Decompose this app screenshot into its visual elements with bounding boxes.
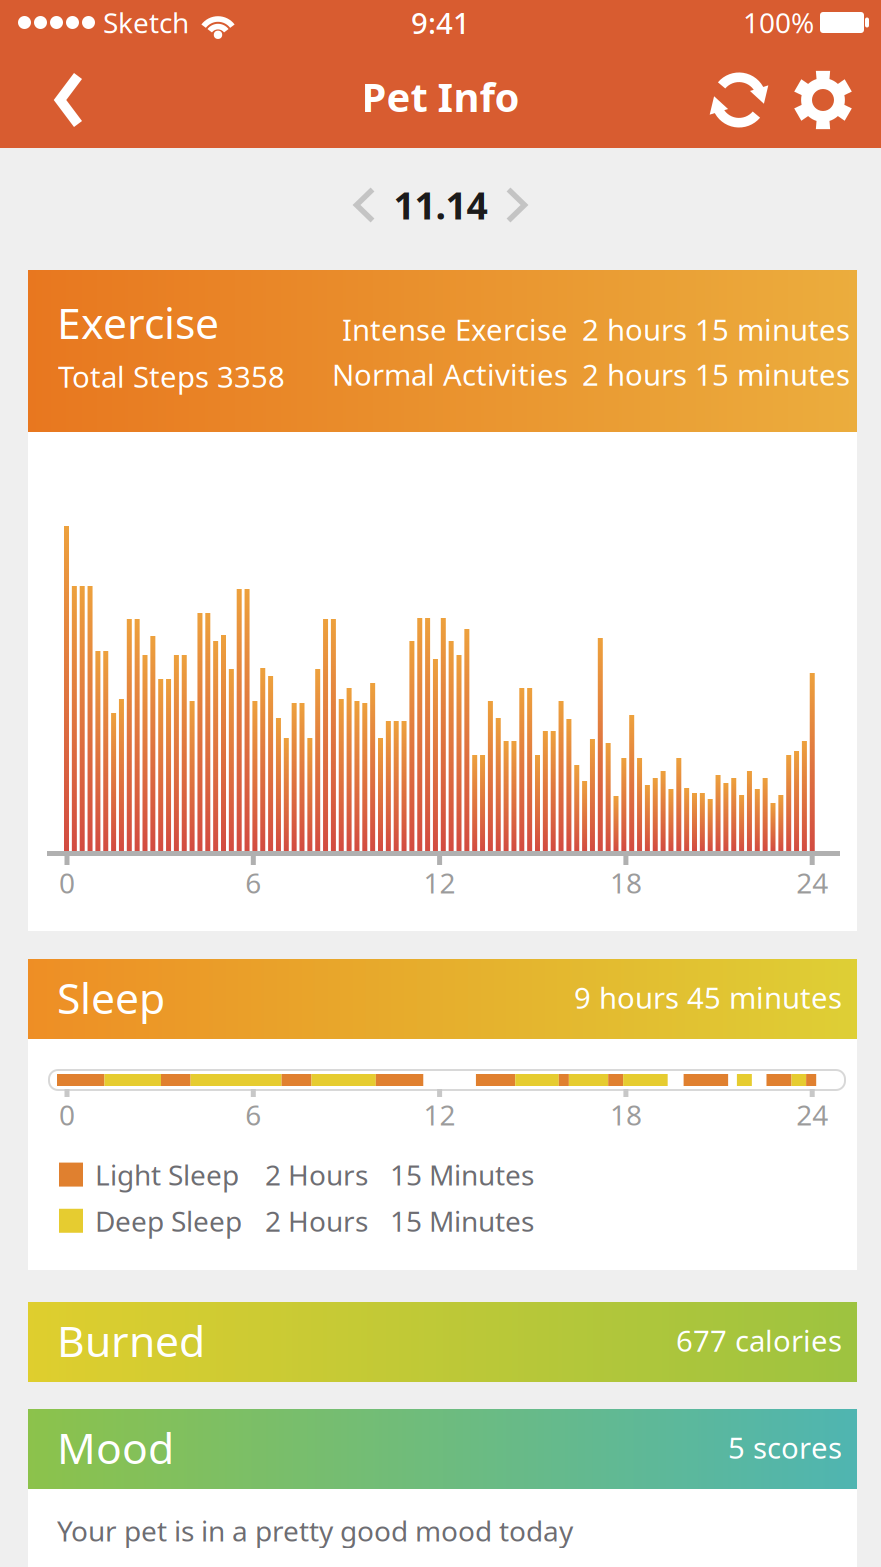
button[interactable]: [0, 48, 104, 152]
button[interactable]: [508, 189, 524, 220]
staticText: 5 scores: [728, 1428, 842, 1467]
staticText: Your pet is in a pretty good mood today: [57, 1512, 573, 1549]
staticText: 100%: [743, 4, 814, 41]
button[interactable]: [793, 70, 881, 130]
staticText: Mood: [57, 1419, 174, 1476]
staticText: 0: [59, 1096, 75, 1133]
staticText: 6: [245, 1096, 261, 1133]
staticText: 24: [796, 1096, 828, 1133]
staticText: 15 Minutes: [390, 1202, 534, 1239]
staticText: Total Steps 3358: [58, 357, 285, 396]
staticText: 9:41: [411, 3, 470, 42]
staticText: 18: [610, 1096, 642, 1133]
staticText: 677 calories: [676, 1321, 842, 1360]
staticText: 12: [424, 1096, 456, 1133]
staticText: Deep Sleep: [95, 1202, 242, 1239]
staticText: 2 Hours: [265, 1202, 368, 1239]
staticText: Pet Info: [361, 70, 519, 123]
staticText: Burned: [57, 1312, 205, 1369]
staticText: 2 Hours: [265, 1156, 368, 1193]
staticText: Normal Activities: [332, 355, 568, 394]
staticText: 15 Minutes: [390, 1156, 534, 1193]
staticText: Exercise: [57, 294, 219, 351]
staticText: 2 hours 15 minutes: [582, 310, 850, 349]
staticText: 11.14: [393, 180, 487, 230]
staticText: Sleep: [57, 969, 165, 1026]
staticText: 0: [59, 864, 75, 901]
staticText: Light Sleep: [95, 1156, 239, 1193]
staticText: 2 hours 15 minutes: [582, 355, 850, 394]
staticText: 18: [610, 864, 642, 901]
staticText: Intense Exercise: [342, 310, 568, 349]
button[interactable]: [707, 68, 793, 132]
staticText: 9 hours 45 minutes: [574, 978, 842, 1017]
staticText: 24: [796, 864, 828, 901]
staticText: 12: [424, 864, 456, 901]
staticText: Sketch: [103, 4, 189, 41]
button[interactable]: [356, 189, 372, 220]
staticText: 6: [245, 864, 261, 901]
